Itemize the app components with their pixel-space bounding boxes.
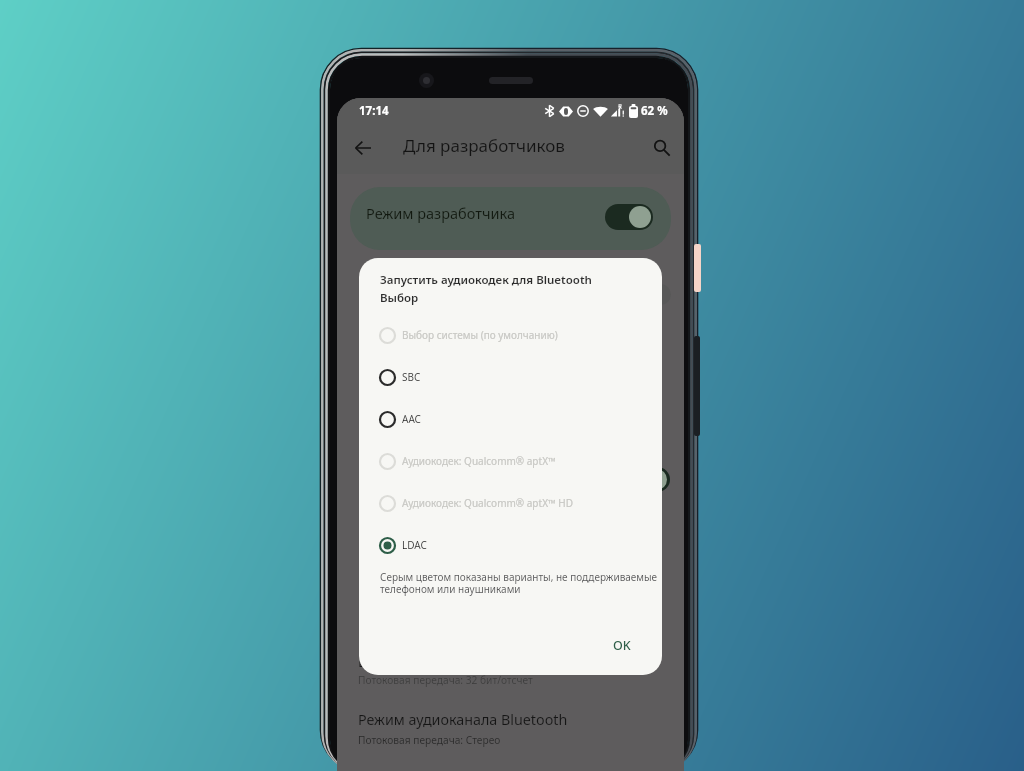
staticText: Выбор системы (по умолчанию) — [402, 328, 558, 342]
button[interactable]: AAC — [359, 398, 662, 440]
staticText: Для разработчиков — [403, 134, 565, 157]
staticText: 17:14 — [359, 103, 389, 119]
button[interactable]: Back — [349, 134, 377, 162]
staticText: Потоковая передача: 32 бит/отсчет — [358, 673, 533, 687]
button[interactable]: LDAC — [358, 652, 533, 687]
staticText: AAC — [402, 412, 421, 426]
button[interactable]: Search — [648, 134, 676, 162]
staticText: OK — [613, 637, 631, 654]
staticText: LDAC — [402, 538, 427, 552]
button[interactable]: SBC — [359, 356, 662, 398]
button[interactable]: OK — [605, 633, 639, 658]
button[interactable]: Аудиокодек: Qualcomm® aptX™ HD — [359, 482, 662, 524]
staticText: LDAC — [358, 652, 394, 671]
staticText: Аудиокодек: Qualcomm® aptX™ — [402, 454, 556, 468]
button[interactable]: Режим разработчика — [350, 187, 671, 250]
staticText: Серым цветом показаны варианты, не подде… — [380, 570, 658, 596]
staticText: Потоковая передача: Стерео — [358, 733, 501, 747]
button[interactable]: Аудиокодек: Qualcomm® aptX™ — [359, 440, 662, 482]
button[interactable]: Режим аудиоканала Bluetooth — [358, 710, 568, 747]
staticText: 62 % — [641, 103, 668, 119]
staticText: SBC — [402, 370, 421, 384]
staticText: Режим разработчика — [366, 203, 515, 223]
staticText: Аудиокодек: Qualcomm® aptX™ HD — [402, 496, 574, 510]
staticText: Запустить аудиокодек для Bluetooth Выбор — [380, 272, 592, 305]
button[interactable]: LDAC — [359, 524, 662, 566]
staticText: Режим аудиоканала Bluetooth — [358, 710, 568, 729]
button[interactable]: Выбор системы (по умолчанию) — [359, 314, 662, 356]
